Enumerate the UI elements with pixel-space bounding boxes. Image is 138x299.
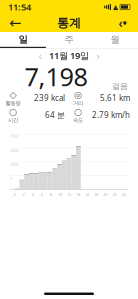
staticText: 2.79 km/h <box>92 110 130 120</box>
button[interactable]: 주 <box>46 32 92 48</box>
staticText: 0 <box>10 176 12 181</box>
staticText: 22 <box>112 192 116 197</box>
staticText: 7,198 <box>24 60 87 93</box>
staticText: 통계 <box>57 16 81 30</box>
staticText: 239 kcal <box>34 93 65 103</box>
staticText: › <box>96 48 99 63</box>
staticText: ‹ <box>38 48 41 63</box>
staticText: 16 <box>85 192 89 197</box>
staticText: 2 <box>23 192 25 197</box>
staticText: 64 분 <box>45 110 65 120</box>
staticText: 5.61 km <box>100 93 130 103</box>
staticText: 걸음 <box>112 81 128 91</box>
staticText: 11월 19일 <box>49 49 89 62</box>
staticText: 월 <box>110 34 119 45</box>
staticText: ‹• <box>118 15 127 31</box>
staticText: 0 <box>13 192 15 197</box>
button[interactable]: Previous day <box>33 49 47 61</box>
staticText: 7500 <box>10 134 18 139</box>
staticText: 2500 <box>10 162 18 167</box>
staticText: 20 <box>103 192 107 197</box>
staticText: 시간 <box>8 117 18 124</box>
staticText: 5000 <box>10 148 18 153</box>
staticText: 12 <box>67 192 71 197</box>
staticText: 6 <box>41 192 43 197</box>
staticText: 11:54 <box>8 1 31 13</box>
button[interactable]: Back <box>4 15 26 31</box>
staticText: ○ <box>74 106 82 117</box>
staticText: 8 <box>50 192 52 197</box>
staticText: ○ <box>9 106 17 117</box>
button[interactable]: 월 <box>92 32 138 48</box>
staticText: 4 <box>32 192 34 197</box>
staticText: 속도 <box>73 117 83 124</box>
button[interactable]: 일 <box>0 32 46 48</box>
staticText: ◎ <box>74 89 82 100</box>
staticText: 10 <box>58 192 62 197</box>
staticText: 14 <box>76 192 80 197</box>
button[interactable]: Next day <box>91 49 105 61</box>
staticText: 거리 <box>73 100 83 107</box>
staticText: ▲ <box>113 3 118 11</box>
staticText: ◇ <box>9 89 16 100</box>
staticText: 일 <box>18 34 27 45</box>
staticText: 18 <box>94 192 98 197</box>
button[interactable]: Share <box>112 15 134 31</box>
staticText: 활동량 <box>5 100 20 107</box>
staticText: 24 <box>121 192 125 197</box>
staticText: ← <box>9 15 21 31</box>
staticText: 주 <box>64 34 73 45</box>
